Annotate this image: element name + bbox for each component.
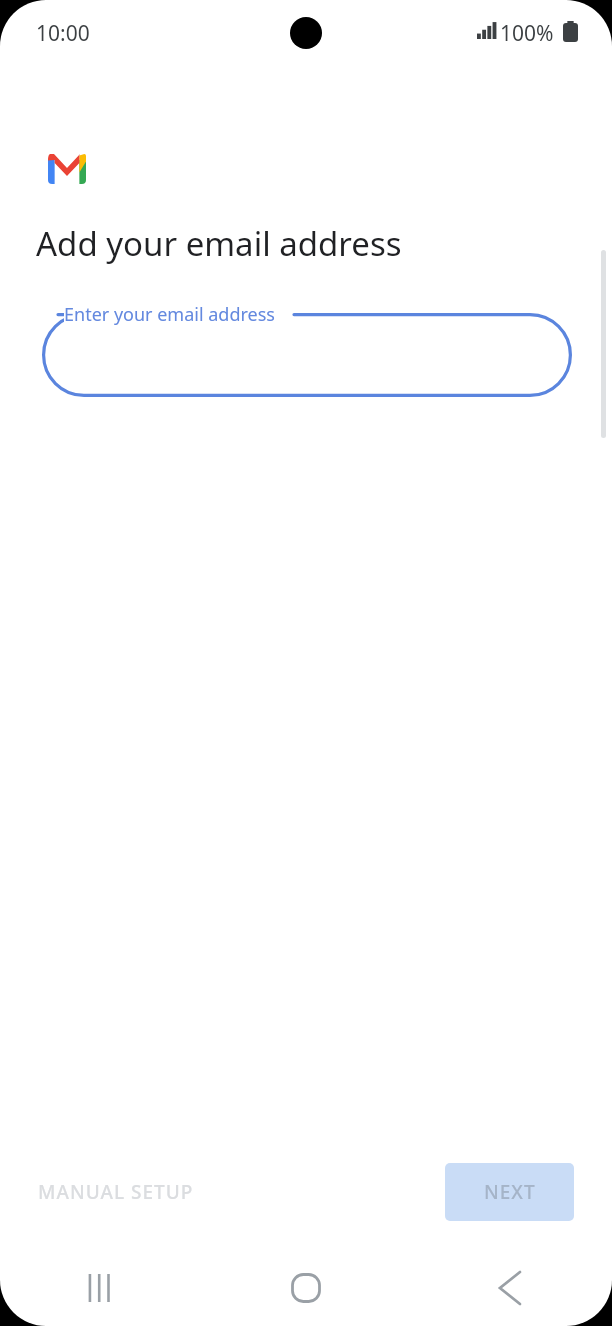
button[interactable]: Back bbox=[408, 1250, 612, 1326]
button[interactable] bbox=[42, 313, 572, 397]
staticText: Enter your email address bbox=[64, 302, 275, 327]
button[interactable]: NEXT bbox=[445, 1163, 574, 1221]
button[interactable]: MANUAL SETUP bbox=[24, 1163, 208, 1221]
staticText: 100% bbox=[500, 19, 554, 48]
button[interactable]: Recent apps bbox=[0, 1250, 204, 1326]
staticText: 10:00 bbox=[36, 19, 90, 48]
staticText: Add your email address bbox=[36, 221, 402, 266]
button[interactable]: Home bbox=[204, 1250, 408, 1326]
staticText: MANUAL SETUP bbox=[38, 1179, 194, 1205]
staticText: NEXT bbox=[484, 1179, 536, 1205]
